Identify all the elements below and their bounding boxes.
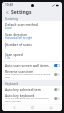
- staticText: Scan speed: [5, 52, 23, 56]
- button[interactable]: Scan direction: [2, 31, 62, 41]
- button[interactable]: Auto scan screen wall items: [2, 62, 62, 68]
- staticText: Scan the keyboard keys on the keyboard w…: [5, 97, 53, 103]
- button[interactable]: Number of scans: [2, 41, 62, 51]
- staticText: Scanning: [5, 17, 18, 21]
- staticText: 1: [5, 46, 7, 50]
- button[interactable]: Reverse scan item: [2, 68, 62, 80]
- staticText: Number of scans: [5, 42, 32, 46]
- button[interactable]: Auto key selected item: [2, 86, 62, 92]
- staticText: Scan reverses by pressing a item a secon…: [5, 73, 53, 79]
- staticText: Keyboard: [5, 82, 19, 86]
- button[interactable]: Home: [25, 104, 39, 111]
- staticText: Local: [5, 26, 12, 30]
- button[interactable]: Default scan method: [2, 21, 62, 31]
- button[interactable]: Back: [7, 104, 21, 111]
- button[interactable]: Scan speed: [2, 51, 62, 61]
- staticText: Auto key keyboard: [5, 93, 35, 97]
- staticText: Auto scan screen wall items: [5, 63, 49, 67]
- staticText: Auto key selected item: [5, 87, 41, 91]
- button[interactable]: Auto key keyboard: [2, 92, 62, 104]
- staticText: Horizontal left to right: [5, 36, 33, 40]
- button[interactable]: Recent apps: [44, 104, 58, 111]
- staticText: Default scan method: [5, 22, 38, 26]
- staticText: Scan direction: [5, 32, 28, 36]
- button[interactable]: Back: [4, 9, 10, 15]
- staticText: 10:48: [5, 3, 13, 7]
- staticText: Settings: [11, 9, 32, 16]
- staticText: 1.0s: [5, 56, 10, 60]
- staticText: Reverse scan item: [5, 69, 34, 73]
